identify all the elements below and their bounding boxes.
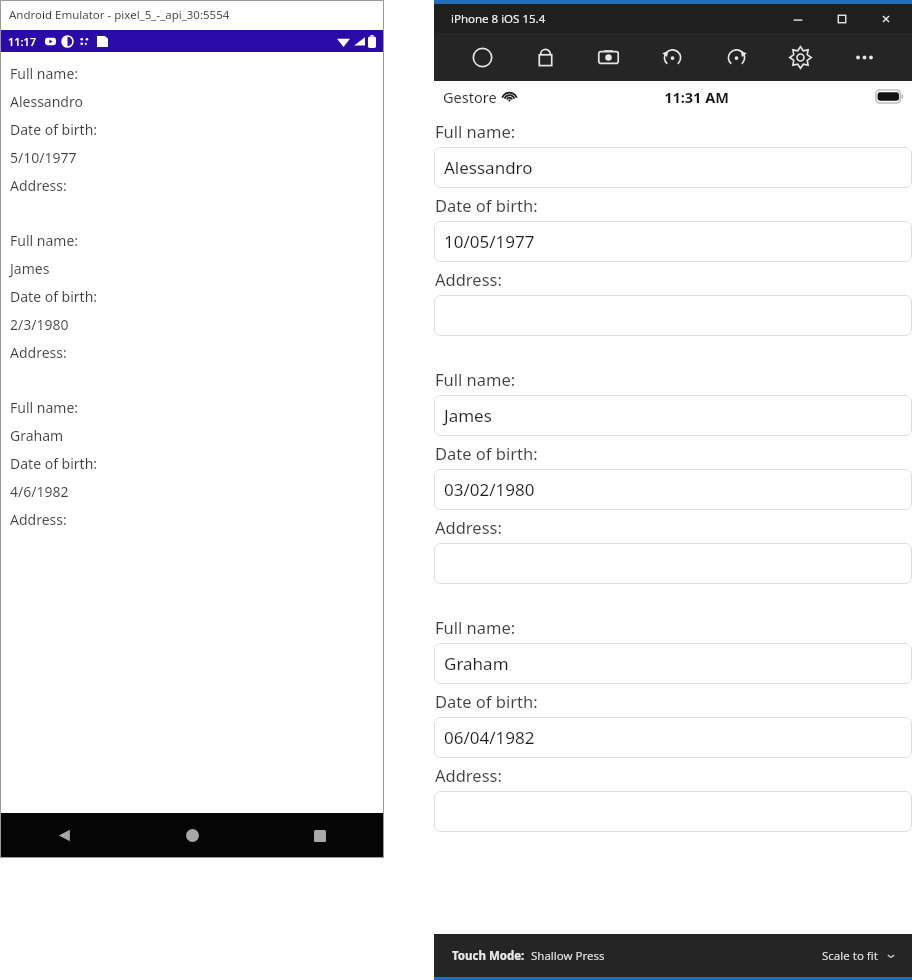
button[interactable]: Full name:	[10, 393, 384, 421]
staticText: Address:	[435, 516, 502, 538]
staticText: 4/6/1982	[10, 482, 69, 501]
button[interactable]: 4/6/1982	[10, 477, 384, 505]
button[interactable]: Rotate left	[650, 35, 694, 79]
staticText: Date of birth:	[435, 194, 538, 216]
button[interactable]: Address:	[10, 171, 384, 199]
staticText: James	[444, 404, 492, 427]
staticText: 03/02/1980	[444, 478, 535, 501]
staticText: Address:	[10, 176, 67, 195]
staticText: Full name:	[435, 616, 516, 638]
staticText: Date of birth:	[10, 287, 98, 306]
staticText: Alessandro	[10, 92, 83, 111]
staticText: 11:31 AM	[664, 87, 729, 107]
staticText: Date of birth:	[10, 454, 98, 473]
staticText: Full name:	[10, 398, 79, 417]
button[interactable]: Back	[0, 813, 128, 858]
button[interactable]: 03/02/1980	[434, 469, 912, 510]
button[interactable]: Recent apps	[256, 813, 384, 858]
staticText: Shallow Press	[531, 948, 605, 964]
staticText: Full name:	[435, 368, 516, 390]
staticText: Graham	[10, 426, 64, 445]
button[interactable]: 2/3/1980	[10, 310, 384, 338]
staticText: Date of birth:	[435, 690, 538, 712]
staticText: 10/05/1977	[444, 230, 535, 253]
staticText: Touch Mode:	[452, 948, 525, 964]
button[interactable]: Rotate right	[714, 35, 758, 79]
staticText: Graham	[444, 652, 509, 675]
button[interactable]: James	[434, 395, 912, 436]
button[interactable]: Date of birth:	[10, 282, 384, 310]
staticText: Address:	[435, 268, 502, 290]
button[interactable]: Close	[864, 4, 908, 33]
button[interactable]: Alessandro	[434, 147, 912, 188]
button[interactable]	[434, 295, 912, 336]
button[interactable]	[434, 543, 912, 584]
staticText: 11:17	[8, 34, 37, 49]
button[interactable]: Android Emulator - pixel_5_-_api_30:5554	[0, 0, 384, 30]
button[interactable]: Graham	[434, 643, 912, 684]
button[interactable]: Maximize	[820, 4, 864, 33]
button[interactable]: Settings	[778, 35, 822, 79]
button[interactable]: Screenshot	[586, 35, 630, 79]
button[interactable]: James	[10, 254, 384, 282]
button[interactable]: Home	[128, 813, 256, 858]
button[interactable]: Touch Mode:	[434, 934, 912, 977]
staticText: Address:	[435, 764, 502, 786]
button[interactable]: More options	[842, 35, 886, 79]
staticText: Address:	[10, 343, 67, 362]
staticText: Android Emulator - pixel_5_-_api_30:5554	[9, 7, 230, 23]
staticText: Address:	[10, 510, 67, 529]
staticText: Full name:	[10, 64, 79, 83]
staticText: Gestore	[443, 87, 497, 107]
staticText: 5/10/1977	[10, 148, 77, 167]
staticText: 2/3/1980	[10, 315, 69, 334]
staticText: iPhone 8 iOS 15.4	[451, 11, 546, 27]
button[interactable]: Date of birth:	[10, 449, 384, 477]
button[interactable]: Graham	[10, 421, 384, 449]
staticText: Date of birth:	[435, 442, 538, 464]
staticText: Full name:	[10, 231, 79, 250]
button[interactable]: 5/10/1977	[10, 143, 384, 171]
staticText: Scale to fit	[822, 948, 878, 964]
button[interactable]	[434, 791, 912, 832]
staticText: Alessandro	[444, 156, 533, 179]
button[interactable]: Alessandro	[10, 87, 384, 115]
button[interactable]: Home	[460, 35, 504, 79]
staticText: Date of birth:	[10, 120, 98, 139]
staticText: James	[10, 259, 50, 278]
button[interactable]: Address:	[10, 505, 384, 533]
button[interactable]: Minimize	[776, 4, 820, 33]
button[interactable]: 10/05/1977	[434, 221, 912, 262]
button[interactable]: Full name:	[10, 59, 384, 87]
button[interactable]: 06/04/1982	[434, 717, 912, 758]
staticText: 06/04/1982	[444, 726, 535, 749]
button[interactable]: Date of birth:	[10, 115, 384, 143]
button[interactable]: Lock	[523, 35, 567, 79]
staticText: Full name:	[435, 120, 516, 142]
button[interactable]: Address:	[10, 338, 384, 366]
button[interactable]: Full name:	[10, 226, 384, 254]
